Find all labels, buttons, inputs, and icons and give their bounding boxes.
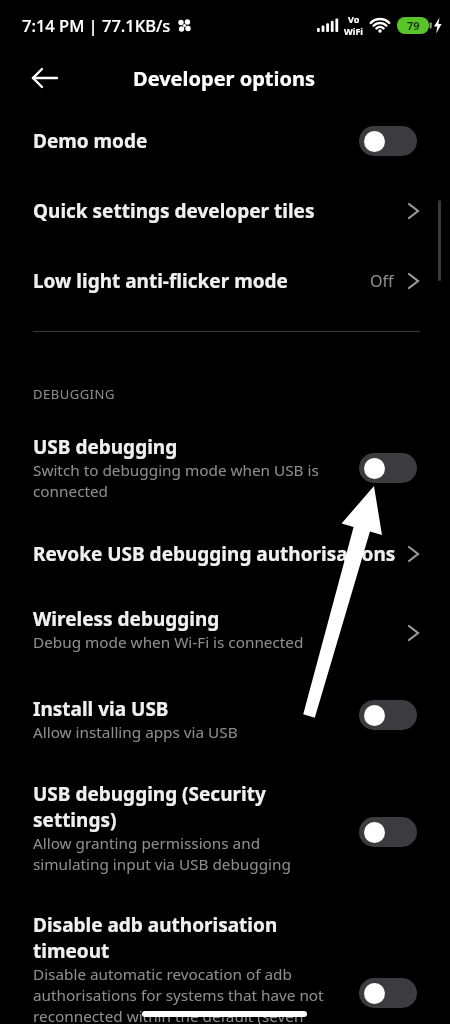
staticText: authorisations for systems that have not xyxy=(33,985,324,1006)
button[interactable] xyxy=(359,453,417,483)
button[interactable] xyxy=(359,126,417,156)
staticText: timeout xyxy=(33,938,110,964)
staticText: 7:14 PM | 77.1KB/s xyxy=(22,14,171,36)
staticText: Disable automatic revocation of adb xyxy=(33,964,292,985)
button[interactable]: Quick settings developer tiles xyxy=(0,176,450,246)
button[interactable] xyxy=(33,68,57,88)
staticText: Low light anti-flicker mode xyxy=(33,268,288,294)
button[interactable]: Demo mode xyxy=(0,106,450,176)
staticText: simulating input via USB debugging xyxy=(33,854,291,875)
staticText: Disable adb authorisation xyxy=(33,912,278,938)
staticText: connected xyxy=(33,481,109,502)
staticText: Allow granting permissions and xyxy=(33,833,261,854)
button[interactable] xyxy=(359,978,417,1008)
staticText: Developer options xyxy=(133,65,316,92)
button[interactable]: Disable adb authorisation xyxy=(0,904,450,1024)
button[interactable]: Low light anti-flicker mode xyxy=(0,246,450,316)
staticText: Install via USB xyxy=(33,696,169,722)
staticText: Switch to debugging mode when USB is xyxy=(33,460,319,481)
staticText: settings) xyxy=(33,807,117,833)
staticText: Allow installing apps via USB xyxy=(33,722,238,743)
staticText: USB debugging xyxy=(33,434,178,460)
staticText: Off xyxy=(370,270,394,292)
button[interactable]: USB debugging (Security xyxy=(0,772,450,884)
staticText: Wireless debugging xyxy=(33,606,220,632)
button[interactable] xyxy=(359,700,417,730)
staticText: Debug mode when Wi-Fi is connected xyxy=(33,632,304,653)
staticText: reconnected within the default (seven xyxy=(33,1006,304,1024)
button[interactable]: Wireless debugging xyxy=(0,593,450,665)
staticText: DEBUGGING xyxy=(33,385,115,403)
button[interactable]: USB debugging xyxy=(0,425,450,510)
staticText: Revoke USB debugging authorisations xyxy=(33,541,396,567)
staticText: 79 xyxy=(407,18,420,33)
button[interactable]: Revoke USB debugging authorisations xyxy=(0,519,450,589)
button[interactable] xyxy=(359,817,417,847)
staticText: Quick settings developer tiles xyxy=(33,198,315,224)
staticText: Demo mode xyxy=(33,128,148,154)
staticText: Vo xyxy=(348,13,360,25)
staticText: USB debugging (Security xyxy=(33,781,266,807)
staticText: WiFi xyxy=(344,25,364,37)
button[interactable]: Install via USB xyxy=(0,687,450,751)
